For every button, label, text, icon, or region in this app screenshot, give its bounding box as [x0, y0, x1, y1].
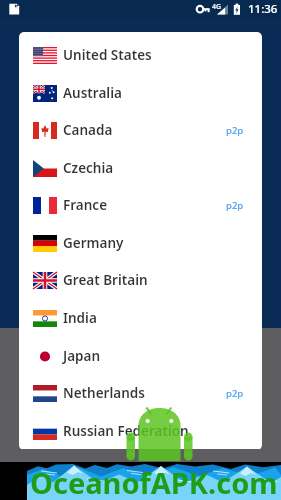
staticText: 4G — [212, 2, 222, 12]
staticText: Netherlands — [63, 384, 145, 402]
staticText: France — [63, 196, 108, 214]
staticText: United States — [63, 46, 152, 64]
staticText: Canada — [63, 121, 113, 139]
staticText: 11:36 — [248, 1, 278, 17]
button[interactable]: Czechia — [19, 149, 262, 187]
button[interactable]: Japan — [19, 337, 262, 375]
button[interactable]: United States — [19, 36, 262, 74]
staticText: OceanofAPK.com — [30, 463, 278, 500]
button[interactable]: India — [19, 299, 262, 337]
staticText: Japan — [63, 347, 101, 365]
staticText: p2p — [226, 387, 244, 400]
button[interactable]: Great Britain — [19, 261, 262, 299]
staticText: Great Britain — [63, 271, 148, 289]
button[interactable]: Russian Federation — [19, 412, 262, 450]
staticText: Germany — [63, 234, 124, 252]
staticText: p2p — [226, 124, 244, 137]
button[interactable]: Germany — [19, 224, 262, 262]
button[interactable]: Australia — [19, 74, 262, 112]
staticText: Russian Federation — [63, 422, 189, 440]
staticText: p2p — [226, 199, 244, 212]
button[interactable]: France — [19, 186, 262, 224]
staticText: Czechia — [63, 159, 114, 177]
button[interactable]: Netherlands — [19, 374, 262, 412]
staticText: India — [63, 309, 97, 327]
button[interactable]: Canada — [19, 111, 262, 149]
staticText: Australia — [63, 84, 122, 102]
